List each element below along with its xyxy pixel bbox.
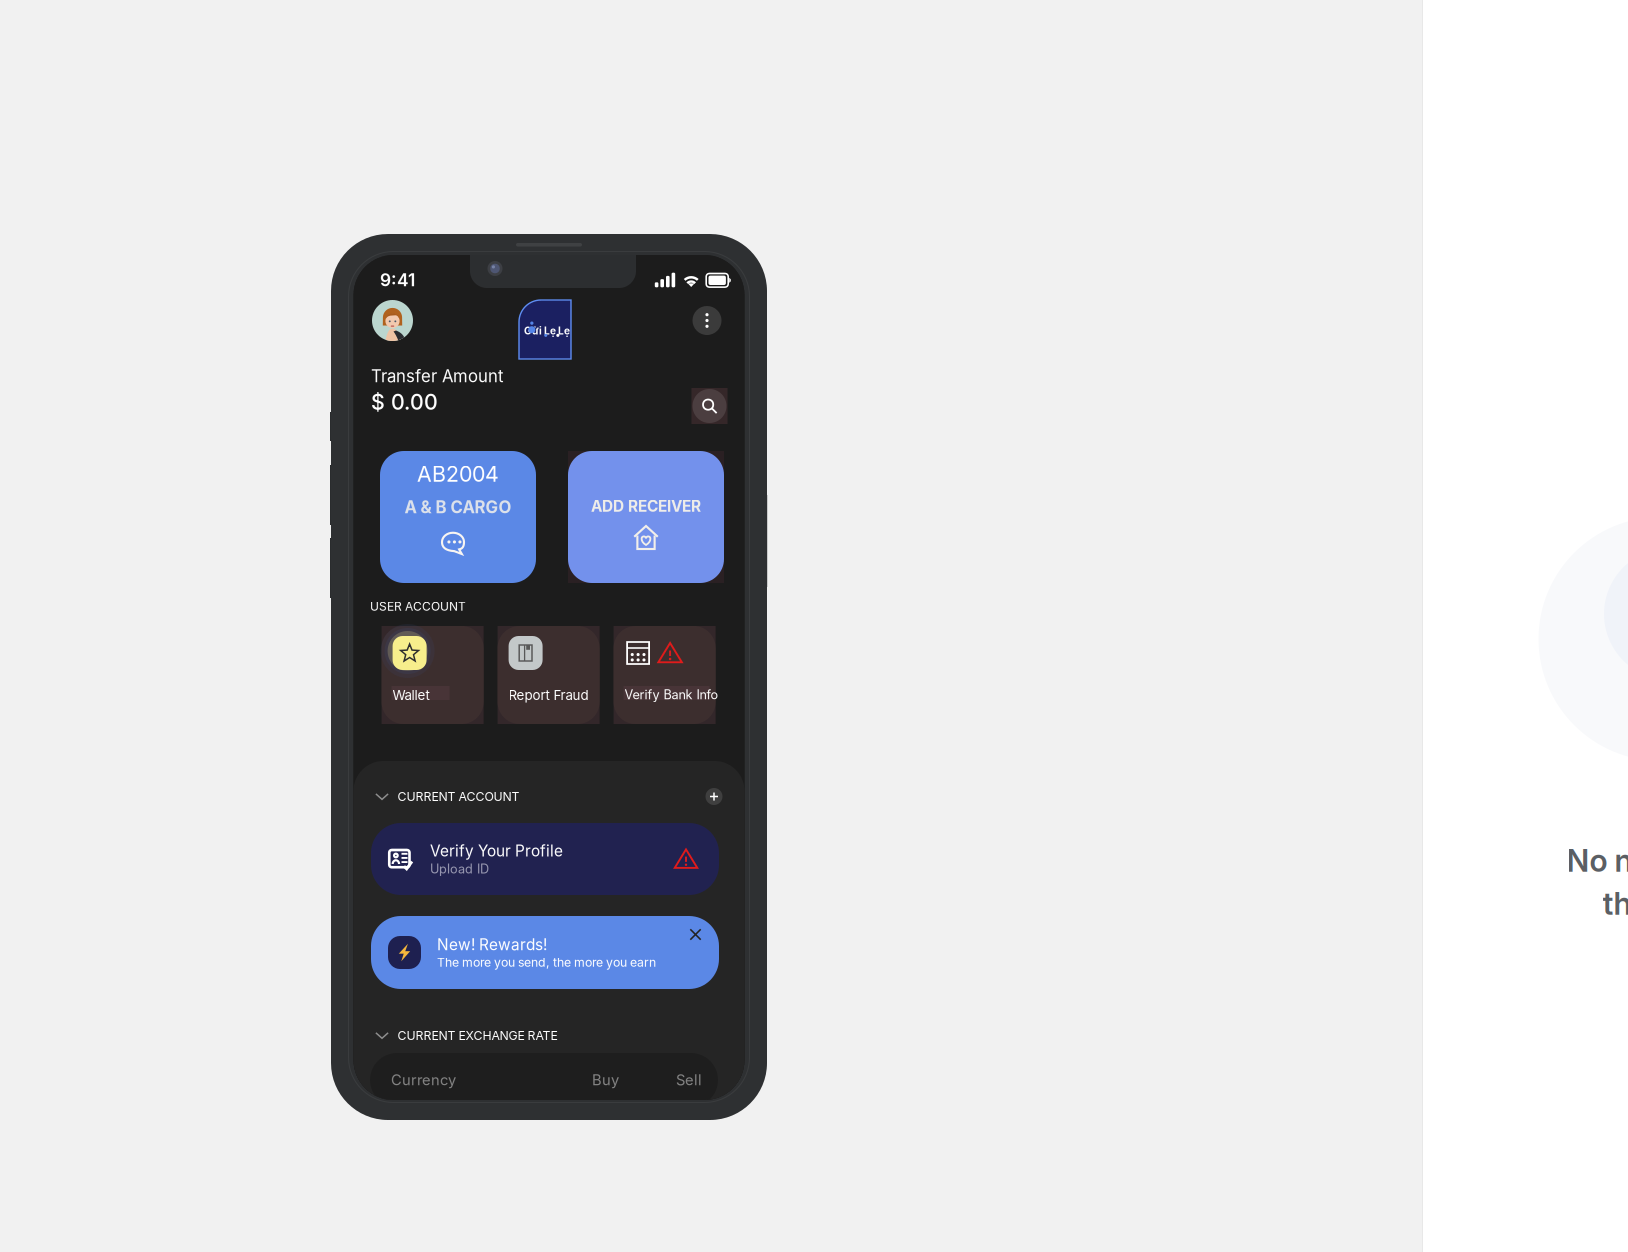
staticText: Sell [676, 1071, 702, 1089]
button[interactable]: Verify Your Profile [371, 823, 719, 895]
button[interactable]: AB2004 [380, 451, 536, 583]
staticText: 9:41 [380, 269, 415, 290]
staticText: Report Fraud [509, 687, 589, 703]
staticText: CURRENT EXCHANGE RATE [397, 1028, 557, 1043]
staticText: Upload ID [430, 861, 489, 876]
staticText: Wallet [393, 687, 430, 703]
staticText: USER ACCOUNT [370, 599, 466, 613]
staticText: The more you send, the more you earn [437, 955, 656, 970]
staticText: this week [1602, 885, 1628, 922]
button[interactable]: CURRENT EXCHANGE RATE [375, 1028, 557, 1043]
staticText: $ 0.00 [371, 389, 438, 415]
button[interactable]: Profile [372, 300, 413, 341]
button[interactable]: More options [692, 306, 721, 335]
staticText: Currency [391, 1071, 456, 1089]
button[interactable]: Dismiss [677, 916, 719, 953]
staticText: A & B CARGO [404, 497, 511, 517]
staticText: ADD RECEIVER [591, 497, 701, 516]
staticText: CURRENT ACCOUNT [397, 789, 519, 804]
staticText: Verify Bank Info [625, 687, 719, 702]
staticText: No new notifications in [1566, 842, 1628, 879]
button[interactable]: ADD RECEIVER [568, 451, 724, 583]
staticText: AB2004 [417, 461, 499, 487]
button[interactable]: Search [691, 388, 727, 424]
staticText: Transfer Amount [371, 366, 503, 386]
staticText: Gửi Lẹ Lẹ [524, 325, 570, 337]
button[interactable]: Report Fraud [498, 626, 600, 724]
staticText: New! Rewards! [437, 935, 547, 954]
button[interactable]: Add account [705, 788, 722, 805]
button[interactable]: Wallet [382, 626, 484, 724]
staticText: Verify Your Profile [430, 842, 563, 860]
button[interactable]: CURRENT ACCOUNT [375, 789, 519, 804]
button[interactable]: Verify Bank Info [614, 626, 716, 724]
staticText: Buy [592, 1071, 619, 1089]
